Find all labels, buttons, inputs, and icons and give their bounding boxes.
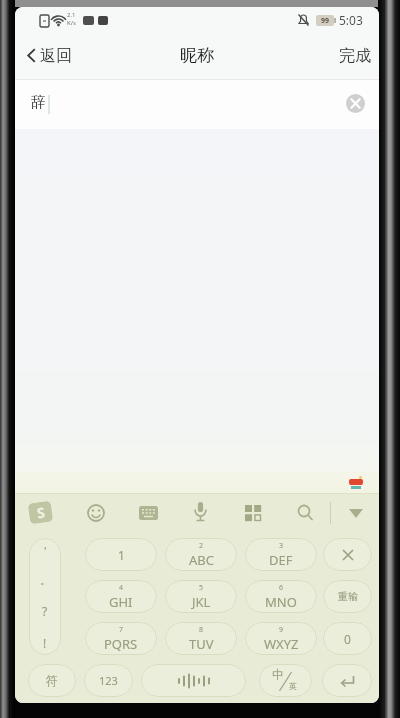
- button[interactable]: S: [28, 500, 53, 524]
- button[interactable]: 123: [84, 664, 133, 697]
- staticText: TUV: [189, 635, 214, 653]
- button[interactable]: [193, 502, 208, 524]
- staticText: 4: [119, 583, 124, 593]
- staticText: 。: [40, 574, 50, 587]
- button[interactable]: [141, 664, 246, 697]
- button[interactable]: 1: [85, 538, 157, 571]
- button[interactable]: [323, 538, 372, 571]
- button[interactable]: [245, 505, 261, 521]
- button[interactable]: [322, 664, 372, 697]
- staticText: 1: [118, 547, 125, 563]
- staticText: 符: [46, 673, 58, 688]
- button[interactable]: 3: [245, 538, 317, 571]
- button[interactable]: 7: [85, 622, 157, 655]
- staticText: ABC: [189, 551, 214, 569]
- staticText: 昵称: [180, 45, 214, 66]
- staticText: 辞: [31, 93, 46, 112]
- staticText: S: [36, 502, 46, 522]
- staticText: ': [44, 543, 47, 558]
- button[interactable]: 4: [85, 580, 157, 613]
- staticText: 9: [279, 625, 284, 635]
- button[interactable]: 重输: [323, 580, 372, 613]
- staticText: 99: [321, 16, 330, 26]
- staticText: WXYZ: [264, 635, 299, 653]
- staticText: K/s: [67, 19, 76, 27]
- staticText: 6: [279, 583, 284, 593]
- staticText: 3: [279, 541, 284, 551]
- button[interactable]: 2: [165, 538, 237, 571]
- staticText: !: [43, 635, 47, 651]
- staticText: 0: [344, 631, 351, 647]
- button[interactable]: 0: [323, 622, 372, 655]
- button[interactable]: [346, 94, 365, 113]
- staticText: 中: [272, 667, 284, 682]
- staticText: 2: [199, 541, 204, 551]
- button[interactable]: 返回: [27, 31, 72, 80]
- staticText: 123: [99, 673, 118, 688]
- button[interactable]: [139, 506, 158, 520]
- staticText: 5: [199, 583, 204, 593]
- staticText: 英: [289, 681, 297, 691]
- button[interactable]: [349, 509, 363, 518]
- staticText: 2.1: [67, 11, 76, 19]
- staticText: 8: [199, 625, 204, 635]
- staticText: JKL: [192, 593, 211, 611]
- staticText: 重输: [338, 590, 358, 603]
- button[interactable]: 5: [165, 580, 237, 613]
- staticText: GHI: [109, 593, 133, 611]
- staticText: MNO: [265, 593, 297, 611]
- button[interactable]: [87, 504, 105, 522]
- staticText: ?: [42, 603, 48, 619]
- staticText: 7: [119, 625, 124, 635]
- staticText: 完成: [339, 46, 371, 66]
- button[interactable]: 8: [165, 622, 237, 655]
- button[interactable]: 符: [28, 664, 76, 697]
- button[interactable]: ': [29, 538, 61, 655]
- staticText: PQRS: [104, 635, 138, 653]
- staticText: DEF: [269, 551, 293, 569]
- button[interactable]: [297, 504, 314, 522]
- button[interactable]: 9: [245, 622, 317, 655]
- staticText: 5:03: [339, 12, 363, 28]
- button[interactable]: 6: [245, 580, 317, 613]
- button[interactable]: 中: [259, 664, 312, 697]
- staticText: 返回: [40, 46, 72, 66]
- button[interactable]: 完成: [339, 46, 379, 66]
